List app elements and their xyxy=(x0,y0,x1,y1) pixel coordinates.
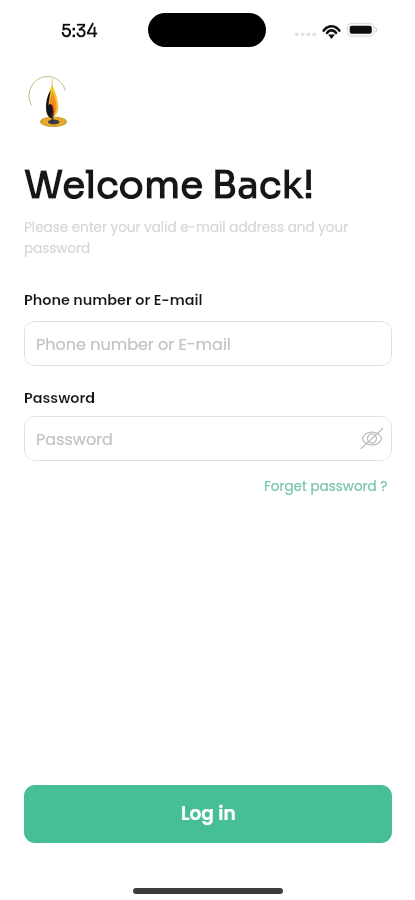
staticText: Phone number or E-mail xyxy=(24,290,203,310)
staticText: 5:34 xyxy=(61,21,98,42)
staticText: Password xyxy=(36,428,113,450)
staticText: Password xyxy=(24,388,96,408)
staticText: Welcome Back! xyxy=(24,162,315,209)
button[interactable]: Password xyxy=(24,416,392,461)
staticText: Forget password ? xyxy=(264,477,388,496)
staticText: Phone number or E-mail xyxy=(36,333,231,355)
button[interactable]: Forget password ? xyxy=(246,474,388,498)
staticText: Log in xyxy=(181,801,236,827)
button[interactable]: Show password xyxy=(361,428,383,449)
staticText: Please enter your valid e-mail address a… xyxy=(24,218,364,257)
button[interactable]: Log in xyxy=(24,785,392,843)
button[interactable]: Phone number or E-mail xyxy=(24,321,392,366)
